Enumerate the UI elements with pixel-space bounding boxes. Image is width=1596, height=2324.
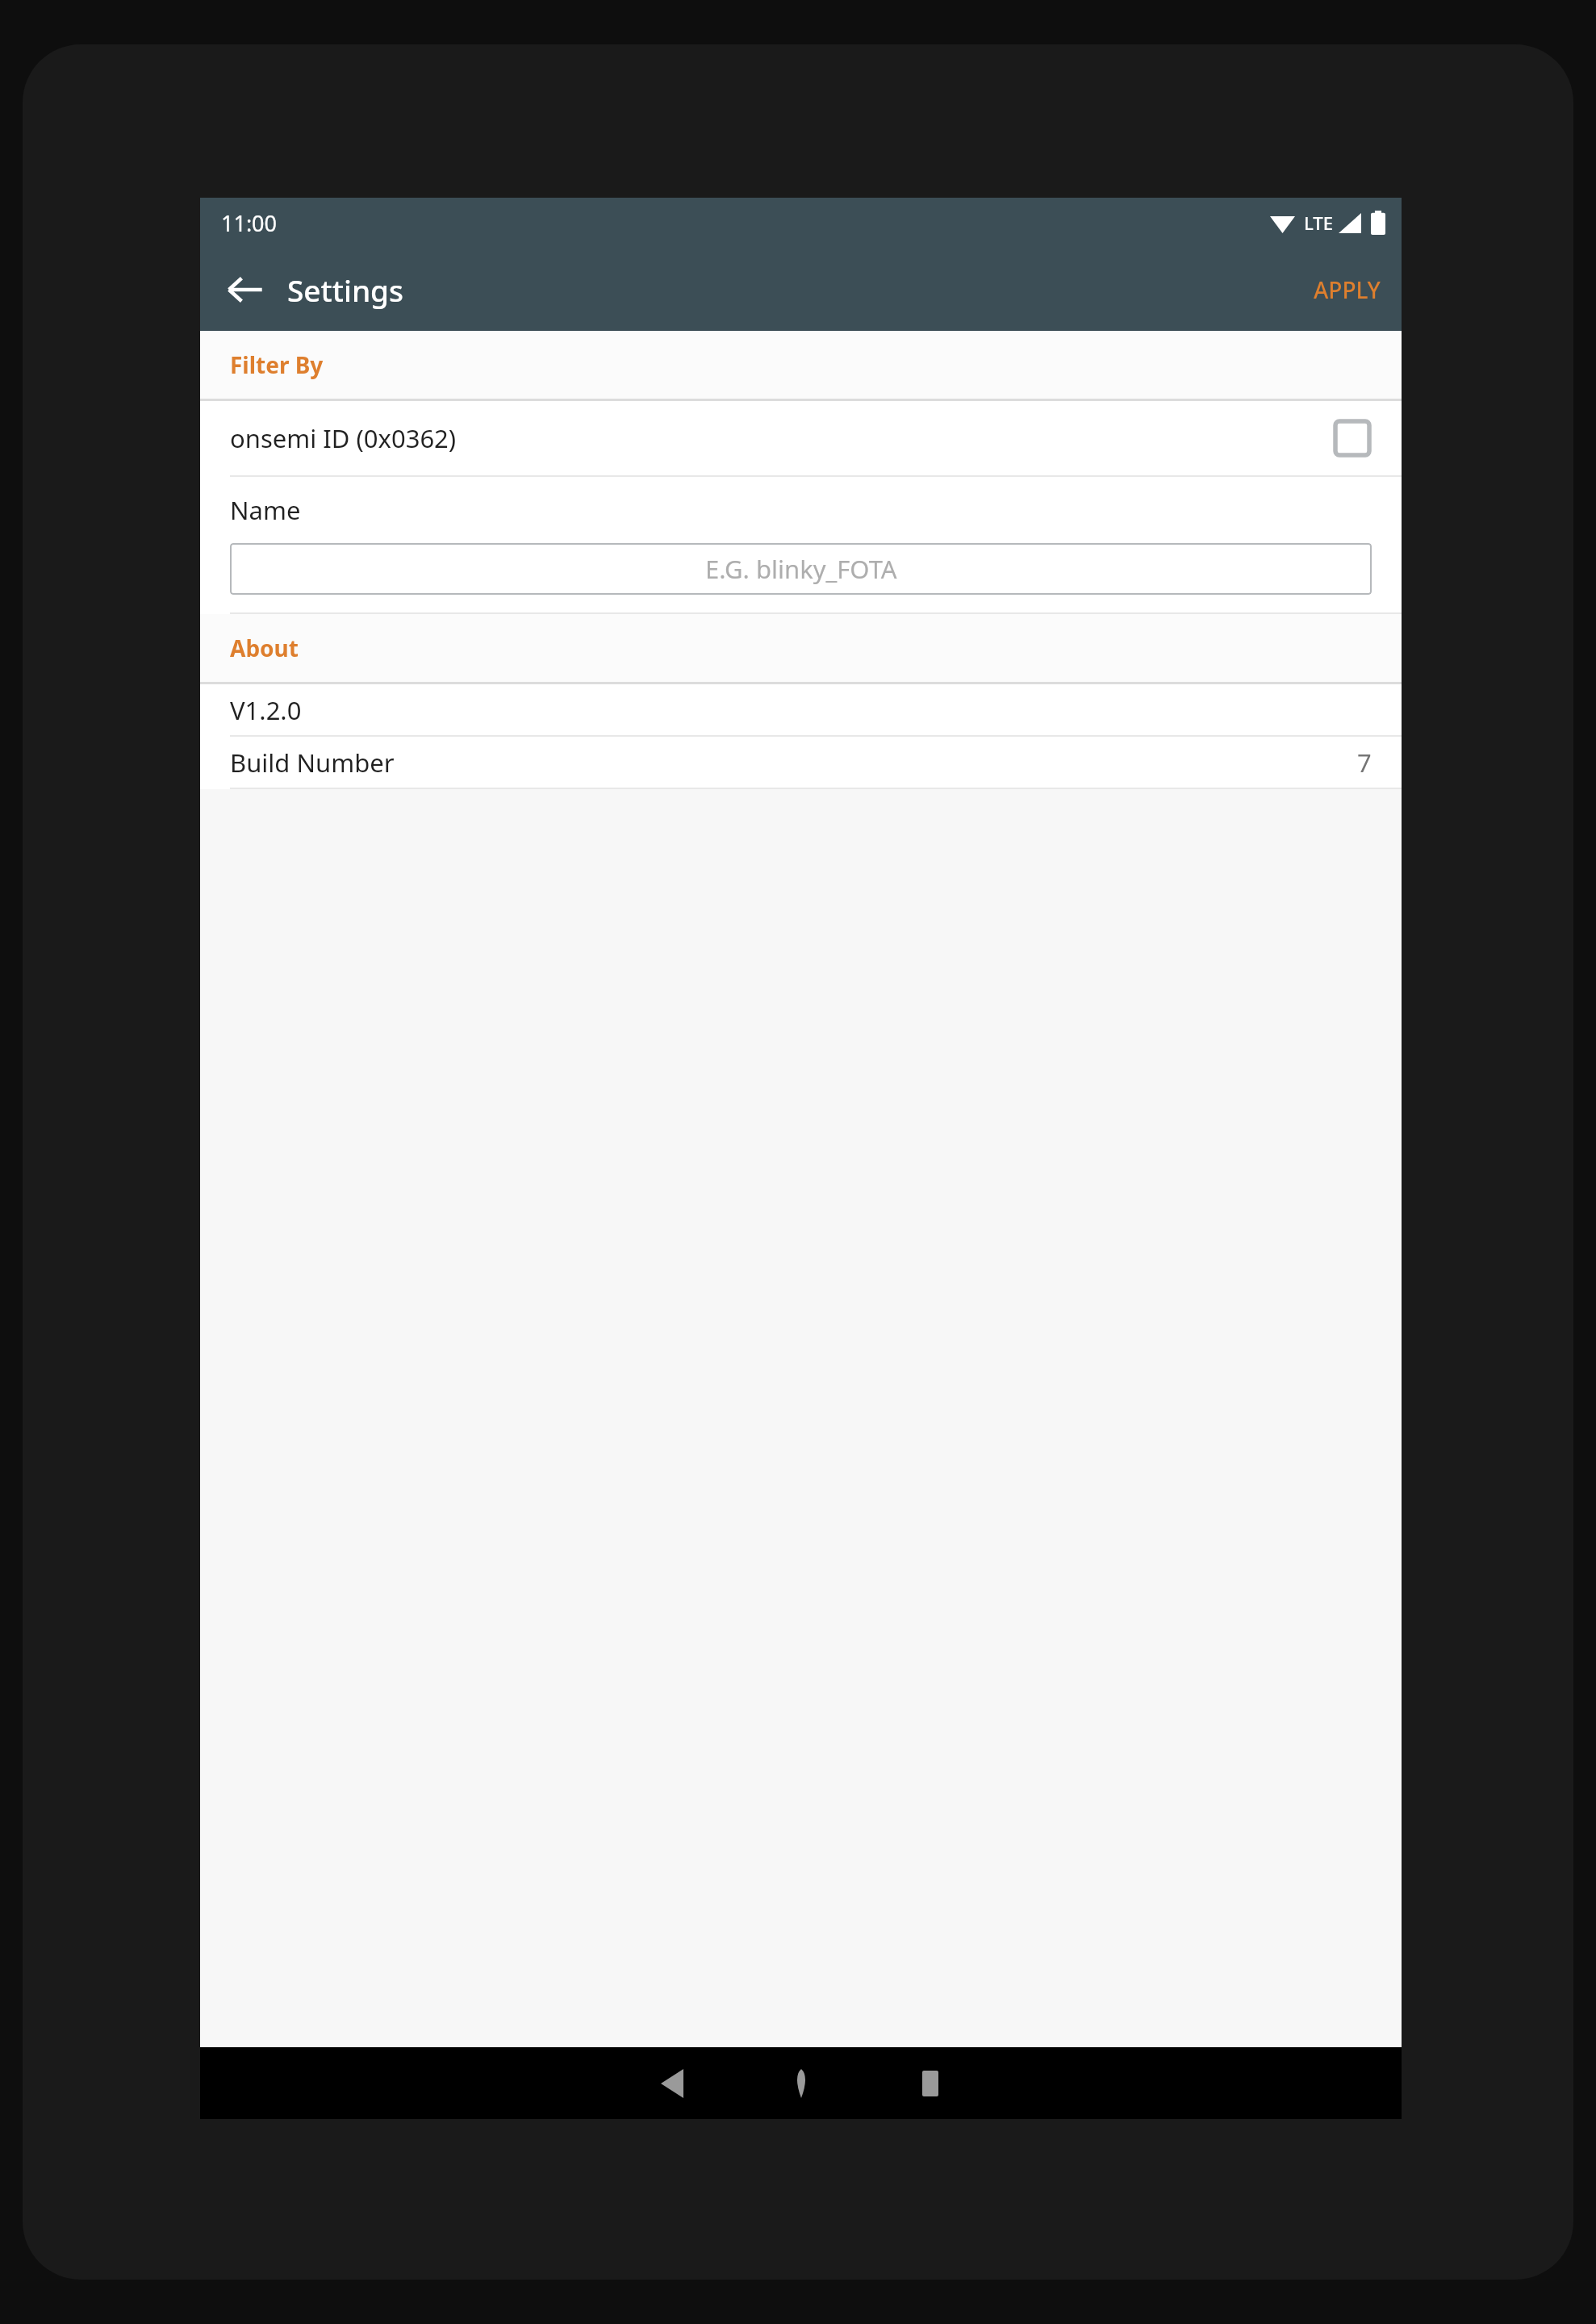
button[interactable]: Home <box>737 2047 866 2119</box>
staticText: Name <box>230 493 301 527</box>
staticText: E.G. blinky_FOTA <box>705 552 897 586</box>
button[interactable]: V1.2.0 <box>200 684 1402 735</box>
button[interactable]: APPLY <box>1293 248 1402 331</box>
staticText: About <box>230 633 299 663</box>
staticText: LTE <box>1304 211 1333 235</box>
staticText: 11:00 <box>221 208 278 238</box>
button[interactable]: Build Number <box>200 737 1402 788</box>
staticText: Build Number <box>230 746 395 780</box>
staticText: Settings <box>287 270 404 310</box>
staticText: onsemi ID (0x0362) <box>230 421 457 455</box>
button[interactable]: Recent apps <box>866 2047 995 2119</box>
button[interactable]: E.G. blinky_FOTA <box>230 543 1372 595</box>
staticText: Filter By <box>230 349 324 380</box>
button[interactable]: onsemi ID (0x0362) <box>200 401 1402 475</box>
button[interactable]: Back <box>215 259 276 320</box>
staticText: V1.2.0 <box>230 693 302 727</box>
staticText: APPLY <box>1314 274 1381 305</box>
staticText: 7 <box>1357 746 1372 780</box>
button[interactable]: Back <box>608 2047 737 2119</box>
